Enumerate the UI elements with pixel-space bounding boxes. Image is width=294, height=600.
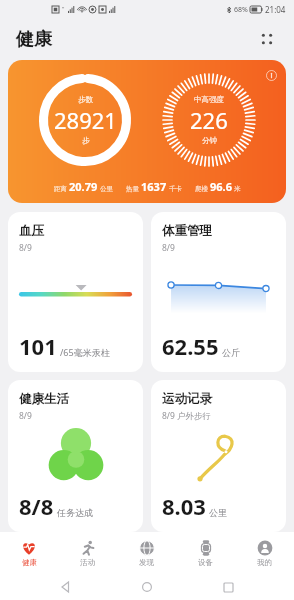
staticText: 公里	[209, 507, 227, 518]
staticText: 8/9	[162, 242, 175, 254]
button[interactable]: 运动记录	[151, 380, 286, 532]
staticText: 8/9	[19, 410, 32, 422]
button[interactable]: Info	[262, 66, 280, 84]
staticText: 我的	[257, 558, 272, 567]
staticText: 任务达成	[57, 507, 93, 518]
staticText: 8.03	[162, 491, 206, 521]
staticText: 千卡	[169, 185, 182, 193]
button[interactable]: 活动	[58, 532, 117, 574]
staticText: 28921	[54, 105, 117, 135]
button[interactable]: Recent apps	[213, 574, 243, 600]
button[interactable]: 我的	[235, 532, 294, 574]
staticText: 步	[82, 136, 90, 145]
staticText: 8/9	[19, 242, 32, 254]
staticText: 热量	[126, 185, 139, 193]
staticText: 68%	[234, 5, 248, 15]
staticText: /65毫米汞柱	[60, 346, 110, 358]
button[interactable]: 健康	[0, 532, 58, 574]
staticText: 发现	[139, 558, 154, 567]
staticText: 血压	[19, 223, 44, 239]
staticText: 体重管理	[162, 223, 212, 239]
staticText: 8/9 户外步行	[162, 410, 212, 422]
staticText: 健康	[16, 28, 52, 51]
staticText: 设备	[198, 558, 213, 567]
staticText: 101	[19, 331, 57, 361]
staticText: 活动	[80, 558, 95, 567]
staticText: 21:04	[265, 4, 286, 15]
button[interactable]: 设备	[176, 532, 235, 574]
staticText: 公斤	[222, 347, 240, 358]
staticText: 20.79	[69, 179, 98, 194]
staticText: 96.6	[210, 179, 232, 194]
staticText: 公里	[100, 185, 113, 193]
staticText: 8/8	[19, 491, 54, 521]
staticText: 运动记录	[162, 391, 212, 407]
button[interactable]: Info	[8, 60, 286, 203]
staticText: 距离	[54, 185, 67, 193]
staticText: 62.55	[162, 331, 219, 361]
staticText: 健康生活	[19, 391, 69, 407]
button[interactable]: 发现	[117, 532, 176, 574]
button[interactable]: 体重管理	[151, 212, 286, 372]
staticText: 步数	[78, 95, 93, 104]
staticText: 226	[190, 105, 228, 135]
button[interactable]: Back	[51, 574, 81, 600]
staticText: 爬楼	[195, 185, 208, 193]
button[interactable]: Home	[132, 574, 162, 600]
staticText: 中高强度	[194, 95, 224, 104]
button[interactable]: 血压	[8, 212, 143, 372]
staticText: 健康	[22, 558, 37, 567]
staticText: 分钟	[202, 136, 217, 145]
staticText: 1637	[141, 179, 167, 194]
button[interactable]: More options	[252, 24, 282, 54]
staticText: "	[62, 5, 65, 13]
staticText: 米	[234, 185, 241, 193]
button[interactable]: 健康生活	[8, 380, 143, 532]
